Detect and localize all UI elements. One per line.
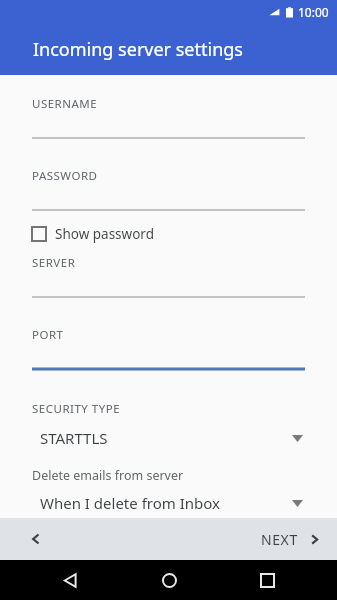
staticText: SERVER bbox=[32, 255, 76, 271]
staticText: When I delete from Inbox bbox=[40, 493, 220, 513]
staticText: SECURITY TYPE bbox=[32, 401, 121, 417]
staticText: STARTTLS bbox=[40, 428, 108, 448]
staticText: Delete emails from server bbox=[32, 467, 184, 484]
staticText: USERNAME bbox=[32, 96, 98, 112]
button[interactable]: NEXT bbox=[247, 518, 337, 560]
button[interactable]: Show password bbox=[32, 221, 305, 247]
button[interactable]: Back bbox=[42, 560, 98, 600]
button[interactable]: Recent apps bbox=[239, 560, 295, 600]
staticText: 10:00 bbox=[298, 4, 329, 20]
staticText: Incoming server settings bbox=[33, 37, 243, 62]
button[interactable]: Back bbox=[0, 518, 72, 560]
button[interactable]: Home bbox=[141, 560, 197, 600]
staticText: PORT bbox=[32, 327, 64, 343]
button[interactable]: STARTTLS bbox=[32, 425, 305, 451]
staticText: PASSWORD bbox=[32, 168, 98, 184]
button[interactable]: When I delete from Inbox bbox=[32, 490, 305, 516]
staticText: Show password bbox=[55, 225, 154, 243]
staticText: NEXT bbox=[261, 530, 298, 549]
